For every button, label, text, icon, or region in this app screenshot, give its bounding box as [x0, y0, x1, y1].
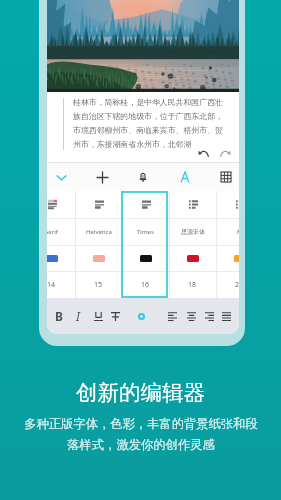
staticText: 思源宋体 — [181, 228, 205, 236]
button[interactable]: Serif — [47, 218, 75, 245]
staticText: 20 — [235, 280, 239, 290]
staticText: Serif — [47, 228, 58, 236]
button[interactable]: Paragraph style 2 — [133, 191, 159, 218]
button[interactable]: Paragraph style 4 — [227, 191, 239, 218]
button[interactable]: Collapse — [47, 163, 75, 191]
staticText: I — [76, 308, 80, 324]
button[interactable]: 20 — [216, 271, 239, 298]
staticText: Times — [137, 228, 154, 236]
button[interactable] — [47, 245, 75, 272]
staticText: Helvetica — [86, 228, 112, 236]
button[interactable]: Insert — [88, 163, 116, 191]
button[interactable]: 14 — [47, 271, 75, 298]
button[interactable]: Align centre — [181, 298, 201, 334]
button[interactable]: 15 — [75, 271, 122, 298]
button[interactable]: Stamp — [129, 163, 157, 191]
button[interactable]: Table — [212, 163, 239, 191]
staticText: 18 — [188, 280, 197, 290]
staticText: 桂林市，简称桂，是中华人民共和国广西壮 族自治区下辖的地级市，位于广西东北部， … — [73, 97, 223, 149]
button[interactable]: Align left — [162, 298, 182, 334]
button[interactable]: 思源宋体 — [169, 218, 216, 245]
button[interactable]: I — [68, 298, 88, 334]
button[interactable]: Text style — [171, 163, 199, 191]
button[interactable]: M — [216, 218, 239, 245]
button[interactable]: Align right — [199, 298, 219, 334]
button[interactable]: Justify — [216, 298, 236, 334]
button[interactable] — [75, 245, 122, 272]
button[interactable]: B — [49, 298, 69, 334]
button[interactable] — [122, 245, 169, 272]
button[interactable]: Helvetica — [75, 218, 122, 245]
button[interactable]: 16 — [122, 271, 169, 298]
button[interactable] — [169, 245, 216, 272]
button[interactable]: Underline — [88, 298, 108, 334]
staticText: M — [237, 228, 239, 236]
staticText: 创新的编辑器 — [76, 379, 205, 405]
button[interactable] — [216, 245, 239, 272]
button[interactable]: Paragraph style 0 — [47, 191, 65, 218]
staticText: B — [55, 308, 63, 324]
staticText: 15 — [94, 280, 103, 290]
staticText: 多种正版字体，色彩，丰富的背景纸张和段 落样式，激发你的创作灵感 — [24, 416, 258, 452]
button[interactable]: Strikethrough — [105, 298, 125, 334]
staticText: 14 — [47, 280, 56, 290]
button[interactable]: Times — [122, 218, 169, 245]
button[interactable]: Paragraph style 3 — [180, 191, 206, 218]
button[interactable]: 18 — [169, 271, 216, 298]
staticText: 16 — [141, 280, 150, 290]
button[interactable]: Text colour — [131, 298, 151, 334]
button[interactable]: Paragraph style 1 — [86, 191, 112, 218]
